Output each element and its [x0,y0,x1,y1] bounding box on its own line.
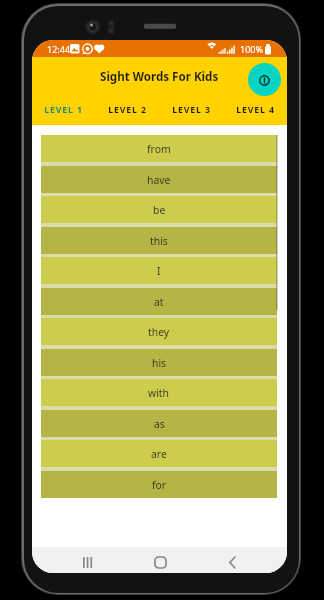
staticText: for [152,478,167,492]
staticText: his [152,356,167,370]
staticText: from [147,142,171,156]
button[interactable]: LEVEL 4 [223,96,287,125]
button[interactable]: from [41,135,277,162]
staticText: LEVEL 2 [108,104,147,116]
staticText: Sight Words For Kids [100,69,219,85]
button[interactable]: at [41,288,277,315]
button[interactable]: LEVEL 2 [95,96,159,125]
staticText: LEVEL 3 [172,104,211,116]
button[interactable]: Info [248,63,281,96]
staticText: are [151,447,167,461]
button[interactable]: his [41,349,277,376]
button[interactable]: LEVEL 3 [159,96,223,125]
button[interactable]: LEVEL 1 [32,96,95,125]
staticText: this [150,234,168,248]
staticText: with [148,386,170,400]
staticText: as [154,417,165,431]
button[interactable]: be [41,196,277,223]
button[interactable]: have [41,166,277,193]
staticText: have [147,173,171,187]
button[interactable]: Recent apps [70,549,104,573]
button[interactable]: this [41,227,277,254]
staticText: at [154,295,164,309]
staticText: LEVEL 4 [236,104,275,116]
staticText: LEVEL 1 [44,104,83,116]
staticText: they [148,325,170,339]
button[interactable]: with [41,379,277,406]
staticText: I [157,264,161,278]
button[interactable]: for [41,471,277,498]
button[interactable]: Home [143,549,177,573]
button[interactable]: they [41,318,277,345]
staticText: be [153,203,166,217]
button[interactable]: Back [215,549,249,573]
button[interactable]: are [41,440,277,467]
button[interactable]: I [41,257,277,284]
staticText: 12:44 [47,43,71,55]
staticText: 100% [240,43,263,55]
button[interactable]: as [41,410,277,437]
